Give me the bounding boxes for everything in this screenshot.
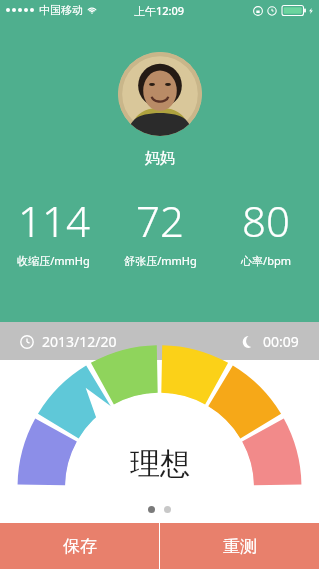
staticText: 理想	[130, 445, 190, 483]
button[interactable]: 重测	[160, 523, 319, 569]
staticText: 2013/12/20	[42, 332, 117, 351]
staticText: 保存	[63, 536, 97, 557]
button[interactable]: Profile photo	[118, 52, 202, 136]
staticText: 80	[242, 192, 290, 249]
staticText: 114	[18, 192, 90, 249]
staticText: 舒张压/mmHg	[124, 253, 197, 268]
staticText: 收缩压/mmHg	[17, 253, 90, 268]
staticText: 妈妈	[145, 149, 175, 168]
staticText: 00:09	[263, 332, 299, 351]
staticText: 重测	[223, 536, 257, 557]
staticText: 心率/bpm	[241, 253, 291, 268]
staticText: 72	[136, 192, 184, 249]
button[interactable]: 保存	[0, 523, 159, 569]
staticText: 上午12:09	[134, 3, 185, 18]
staticText: 中国移动	[39, 3, 83, 17]
